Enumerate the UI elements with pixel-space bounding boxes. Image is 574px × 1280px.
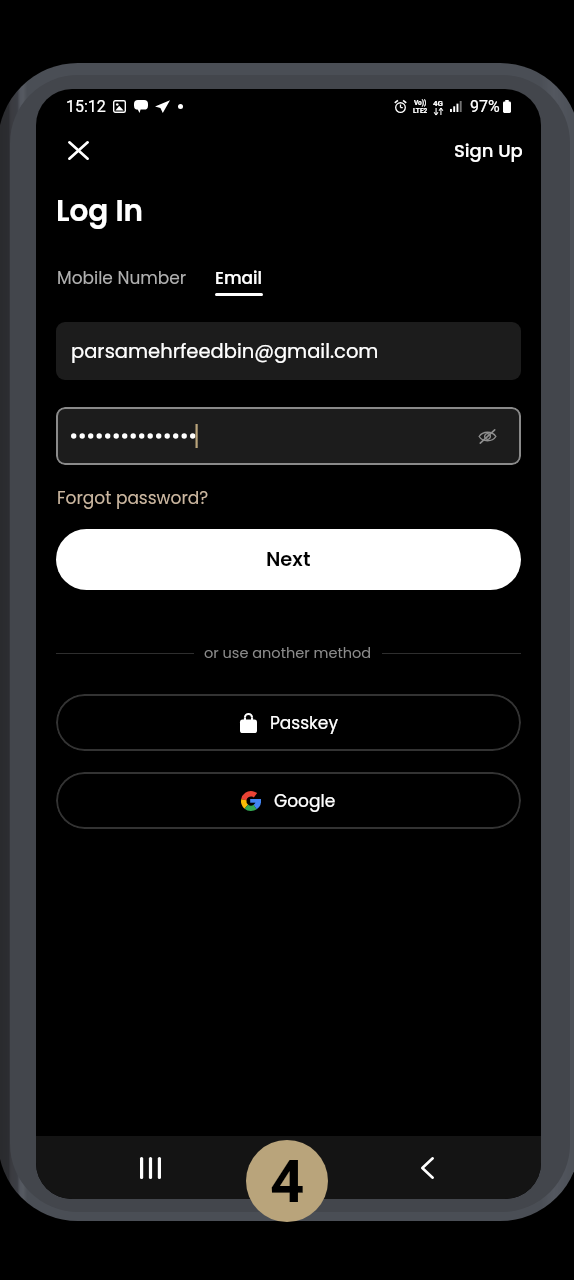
button[interactable]: Mobile Number: [57, 266, 187, 300]
staticText: or use another method: [204, 643, 372, 663]
staticText: Sign Up: [454, 138, 523, 163]
staticText: 4: [270, 1146, 305, 1216]
staticText: parsamehrfeedbin@gmail.com: [71, 338, 379, 365]
staticText: Log In: [56, 190, 144, 231]
button[interactable]: Passkey: [56, 694, 521, 751]
staticText: Next: [266, 546, 311, 573]
button[interactable]: Back: [403, 1144, 451, 1192]
button[interactable]: parsamehrfeedbin@gmail.com: [56, 322, 521, 380]
staticText: LTE2: [413, 107, 428, 115]
button[interactable]: Email: [215, 266, 263, 296]
staticText: 97%: [470, 97, 500, 116]
button[interactable]: Recents: [126, 1144, 174, 1192]
staticText: Mobile Number: [57, 266, 187, 290]
staticText: Google: [274, 789, 336, 813]
button[interactable]: Show password: [56, 407, 521, 465]
button[interactable]: Forgot password?: [57, 486, 209, 510]
button[interactable]: Next: [56, 529, 521, 590]
staticText: 4G: [433, 99, 444, 108]
button[interactable]: 4: [246, 1140, 328, 1222]
staticText: Email: [215, 266, 263, 290]
button[interactable]: Google: [56, 772, 521, 829]
button[interactable]: Sign Up: [454, 138, 523, 163]
staticText: Passkey: [270, 711, 338, 735]
button[interactable]: Close: [58, 130, 98, 170]
button[interactable]: Show password: [474, 423, 500, 449]
staticText: 15:12: [66, 97, 106, 116]
staticText: Vo)): [414, 99, 427, 107]
